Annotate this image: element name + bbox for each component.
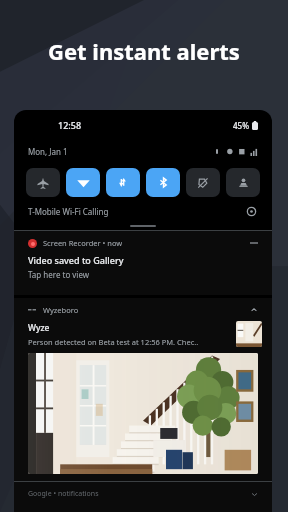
staticText: Person detected on Beta test at 12:56 PM… <box>28 337 199 347</box>
button[interactable]: T-Mobile Wi-Fi Calling <box>14 197 272 225</box>
staticText: Wyze <box>28 322 50 334</box>
staticText: Video saved to Gallery <box>28 254 124 266</box>
staticText: Screen Recorder • now <box>43 238 123 248</box>
staticText: Wyzeboro <box>43 305 79 315</box>
button[interactable]: Screen Recorder • now <box>14 231 272 295</box>
button[interactable]: Flashlight <box>186 168 220 197</box>
staticText: T-Mobile Wi-Fi Calling <box>28 206 109 217</box>
button[interactable]: Bluetooth <box>146 168 180 197</box>
staticText: Get instant alerts <box>48 36 240 66</box>
button[interactable]: Wi-Fi <box>66 168 100 197</box>
staticText: 45% <box>233 120 249 131</box>
button[interactable]: Settings <box>244 204 258 218</box>
button[interactable]: Google • notifications <box>14 482 272 512</box>
staticText: 12:58 <box>58 119 82 131</box>
staticText: Google • notifications <box>28 489 99 499</box>
button[interactable]: Auto rotate <box>226 168 260 197</box>
staticText: Tap here to view <box>28 269 90 280</box>
button[interactable]: Mobile data <box>106 168 140 197</box>
button[interactable]: Wyzeboro <box>14 298 272 481</box>
staticText: Mon, Jan 1 <box>28 146 68 157</box>
button[interactable]: Airplane mode <box>26 168 60 197</box>
